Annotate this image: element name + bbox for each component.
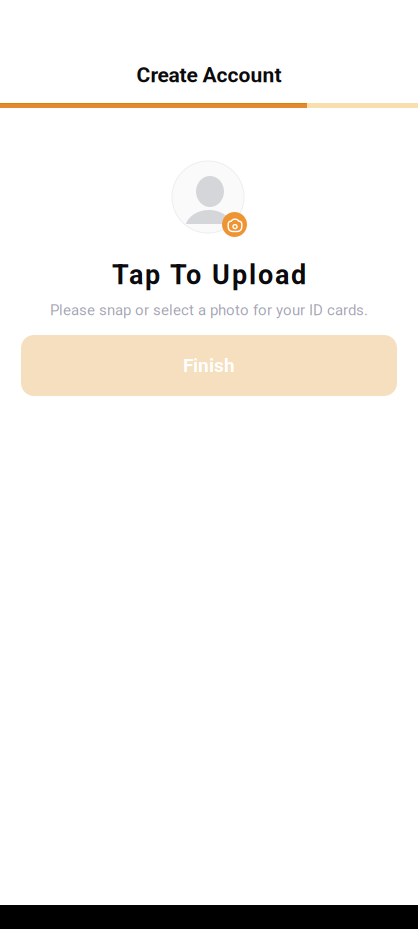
staticText: Create Account: [136, 63, 281, 87]
staticText: Tap To Upload: [112, 259, 306, 291]
button[interactable]: Tap To Upload: [0, 161, 418, 319]
staticText: Finish: [183, 354, 235, 377]
button[interactable]: Finish: [21, 335, 397, 396]
staticText: Please snap or select a photo for your I…: [50, 301, 368, 319]
